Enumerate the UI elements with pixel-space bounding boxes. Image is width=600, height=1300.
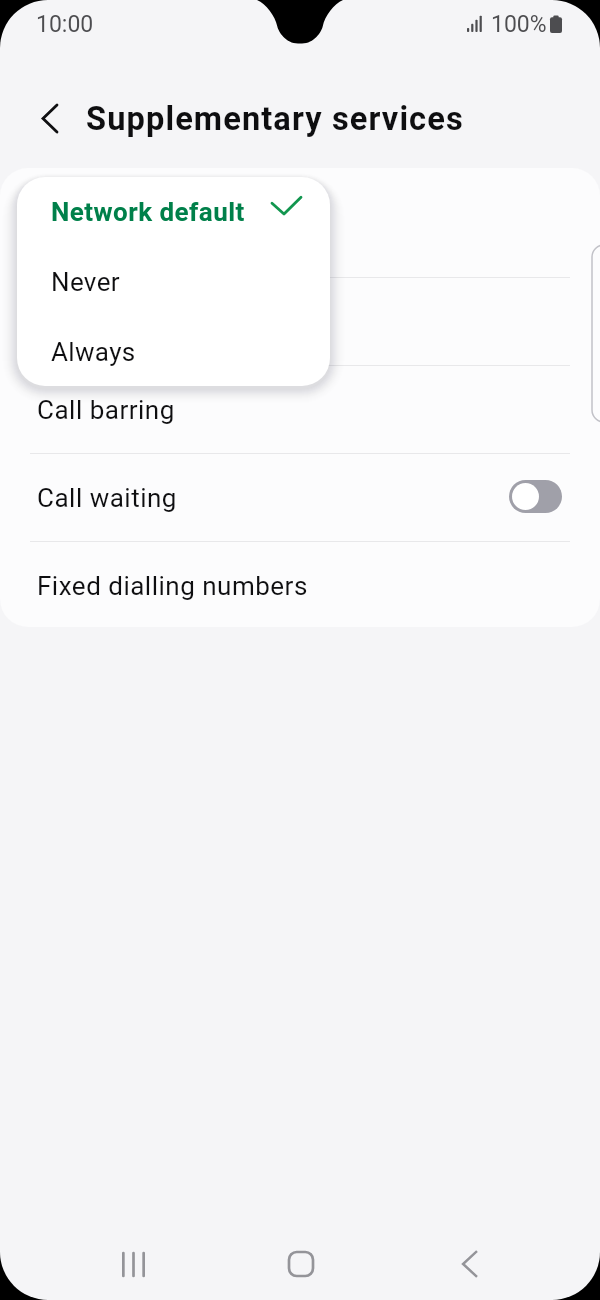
staticText: 10:00: [36, 11, 94, 38]
staticText: Never: [51, 267, 120, 297]
staticText: Network default: [51, 197, 245, 227]
button[interactable]: Back: [413, 1208, 525, 1300]
staticText: Call forwarding: [37, 219, 220, 249]
staticText: Supplementary services: [86, 100, 464, 138]
button[interactable]: Call barring: [0, 366, 600, 453]
staticText: 100%: [491, 11, 547, 38]
staticText: Call barring: [37, 395, 175, 425]
button[interactable]: Always: [17, 317, 330, 386]
button[interactable]: Back: [25, 95, 73, 143]
button[interactable]: Call waiting toggle: [509, 480, 562, 513]
button[interactable]: Network default: [17, 177, 330, 247]
staticText: Always: [51, 337, 136, 367]
staticText: Fixed dialling numbers: [37, 571, 308, 601]
staticText: Call waiting: [37, 483, 177, 513]
button[interactable]: Fixed dialling numbers: [0, 542, 600, 627]
button[interactable]: Recents: [77, 1208, 189, 1300]
button[interactable]: Never: [17, 247, 330, 317]
button[interactable]: Call forwarding: [0, 190, 600, 277]
button[interactable]: Call waiting: [0, 454, 600, 541]
button[interactable]: Show my caller ID: [0, 278, 600, 365]
button[interactable]: Home: [245, 1208, 357, 1300]
